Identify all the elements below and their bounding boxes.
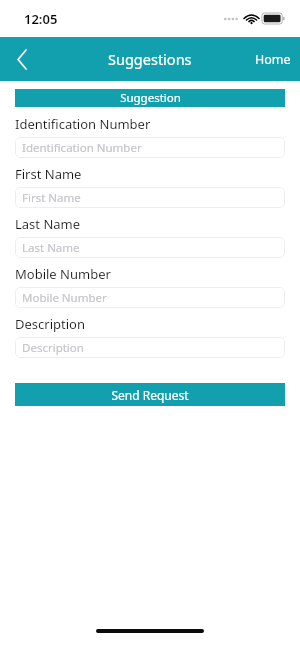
staticText: Description — [22, 340, 84, 356]
staticText: Last Name — [22, 240, 80, 256]
button[interactable]: Suggestion — [15, 89, 285, 107]
button[interactable]: Send Request — [15, 383, 285, 406]
staticText: Suggestion — [120, 90, 181, 106]
button[interactable]: First Name — [15, 187, 285, 208]
staticText: Last Name — [15, 215, 81, 233]
staticText: First Name — [15, 165, 82, 183]
staticText: First Name — [22, 190, 81, 206]
button[interactable]: Home — [246, 39, 300, 80]
staticText: Suggestions — [108, 49, 192, 69]
staticText: Description — [15, 315, 85, 333]
staticText: Identification Number — [15, 115, 151, 133]
button[interactable]: Description — [15, 337, 285, 358]
staticText: Identification Number — [22, 140, 142, 156]
button[interactable]: Identification Number — [15, 137, 285, 158]
button[interactable]: Back — [0, 37, 44, 81]
staticText: Send Request — [111, 387, 189, 403]
staticText: 12:05 — [24, 10, 58, 28]
staticText: Home — [255, 51, 291, 68]
staticText: Mobile Number — [15, 265, 111, 283]
button[interactable]: Mobile Number — [15, 287, 285, 308]
staticText: Mobile Number — [22, 290, 107, 306]
button[interactable]: Last Name — [15, 237, 285, 258]
